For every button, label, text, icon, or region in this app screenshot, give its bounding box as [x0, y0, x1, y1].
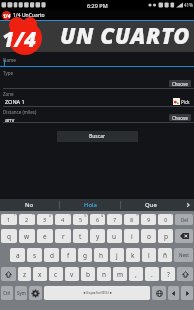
button[interactable]: Shift	[177, 267, 193, 281]
staticText: 8	[130, 216, 134, 223]
button[interactable]: Right	[181, 286, 193, 300]
staticText: n	[102, 270, 107, 279]
button[interactable]: g	[78, 248, 92, 262]
staticText: Name	[3, 57, 16, 63]
button[interactable]: 0	[158, 214, 173, 225]
staticText: &	[101, 214, 104, 218]
button[interactable]: 2	[19, 214, 35, 225]
button[interactable]: v	[65, 267, 79, 281]
staticText: Ctrl	[3, 290, 11, 296]
staticText: k	[131, 251, 135, 260]
button[interactable]: r	[55, 229, 71, 243]
staticText: Hola	[84, 201, 97, 209]
button[interactable]: ,	[129, 267, 143, 281]
button[interactable]: Left	[168, 286, 179, 300]
button[interactable]: 9	[141, 214, 156, 225]
button[interactable]: b	[81, 267, 95, 281]
button[interactable]: u	[107, 229, 122, 243]
staticText: #	[49, 214, 52, 218]
staticText: a	[16, 251, 20, 260]
button[interactable]: Choose	[169, 114, 191, 121]
button[interactable]: 3	[37, 214, 53, 225]
button[interactable]: l	[142, 248, 156, 262]
staticText: v	[70, 270, 74, 279]
staticText: p	[164, 232, 168, 241]
staticText: o	[147, 232, 151, 241]
staticText: 4	[61, 216, 65, 223]
staticText: "	[32, 214, 34, 218]
staticText: ·	[154, 214, 155, 218]
button[interactable]: 6	[90, 214, 105, 225]
button[interactable]: x	[33, 267, 47, 281]
button[interactable]: Next	[174, 248, 193, 262]
button[interactable]: f	[61, 248, 76, 262]
button[interactable]: a	[10, 248, 25, 262]
staticText: i	[131, 232, 133, 241]
button[interactable]: 7	[107, 214, 122, 225]
staticText: No	[25, 201, 34, 209]
button[interactable]: 5	[73, 214, 88, 225]
staticText: r	[62, 232, 65, 241]
staticText: j	[116, 251, 118, 260]
button[interactable]: t	[73, 229, 88, 243]
button[interactable]: c	[49, 267, 63, 281]
button[interactable]: .	[145, 267, 159, 281]
staticText: 1/4 UnCuarto	[13, 12, 45, 19]
button[interactable]: e	[37, 229, 53, 243]
button[interactable]: y	[90, 229, 105, 243]
button[interactable]: More suggestions	[181, 199, 194, 211]
button[interactable]: n	[97, 267, 111, 281]
staticText: ·	[171, 214, 172, 218]
button[interactable]: ◂ Español(ES) ▸	[44, 286, 150, 300]
staticText: Buscar	[89, 133, 106, 140]
staticText: e	[43, 232, 47, 241]
staticText: 2	[25, 216, 29, 223]
staticText: y	[96, 232, 100, 241]
button[interactable]: d	[44, 248, 59, 262]
staticText: g	[83, 251, 87, 260]
staticText: 6	[96, 216, 100, 223]
staticText: b	[86, 270, 90, 279]
button[interactable]: k	[126, 248, 140, 262]
button[interactable]: ñ	[158, 248, 172, 262]
button[interactable]: Hola	[60, 199, 120, 211]
staticText: ñ	[163, 251, 168, 260]
button[interactable]: o	[141, 229, 156, 243]
staticText: ZONA 1	[5, 98, 25, 105]
staticText: any	[5, 116, 15, 123]
staticText: 9	[147, 216, 151, 223]
button[interactable]: Buscar	[57, 131, 138, 142]
button[interactable]: No	[0, 199, 59, 211]
button[interactable]: j	[110, 248, 124, 262]
button[interactable]: Sym	[15, 286, 27, 300]
button[interactable]: 1/4	[0, 10, 194, 20]
button[interactable]: h	[94, 248, 108, 262]
staticText: Zone	[3, 91, 14, 97]
button[interactable]: Pick	[173, 98, 190, 105]
button[interactable]: Delete	[175, 214, 193, 225]
staticText: 0	[164, 216, 168, 223]
button[interactable]: i	[124, 229, 139, 243]
staticText: ·	[69, 214, 70, 218]
button[interactable]: ?	[161, 267, 175, 281]
staticText: t	[79, 232, 82, 241]
button[interactable]: Que	[121, 199, 181, 211]
button[interactable]: Shift	[1, 267, 16, 281]
button[interactable]: Choose	[169, 80, 191, 87]
button[interactable]: Language	[152, 286, 166, 300]
button[interactable]: w	[19, 229, 35, 243]
button[interactable]: q	[1, 229, 17, 243]
button[interactable]: s	[27, 248, 42, 262]
button[interactable]: z	[18, 267, 31, 281]
button[interactable]: Settings	[29, 286, 42, 300]
button[interactable]: Backspace	[175, 229, 193, 243]
button[interactable]: 4	[55, 214, 71, 225]
staticText: Choose	[172, 115, 188, 121]
staticText: °	[14, 214, 16, 218]
button[interactable]: 1	[1, 214, 17, 225]
button[interactable]: m	[113, 267, 127, 281]
staticText: ◂ Español(ES) ▸	[83, 290, 112, 296]
button[interactable]: Ctrl	[1, 286, 13, 300]
button[interactable]: 8	[124, 214, 139, 225]
button[interactable]: p	[158, 229, 173, 243]
